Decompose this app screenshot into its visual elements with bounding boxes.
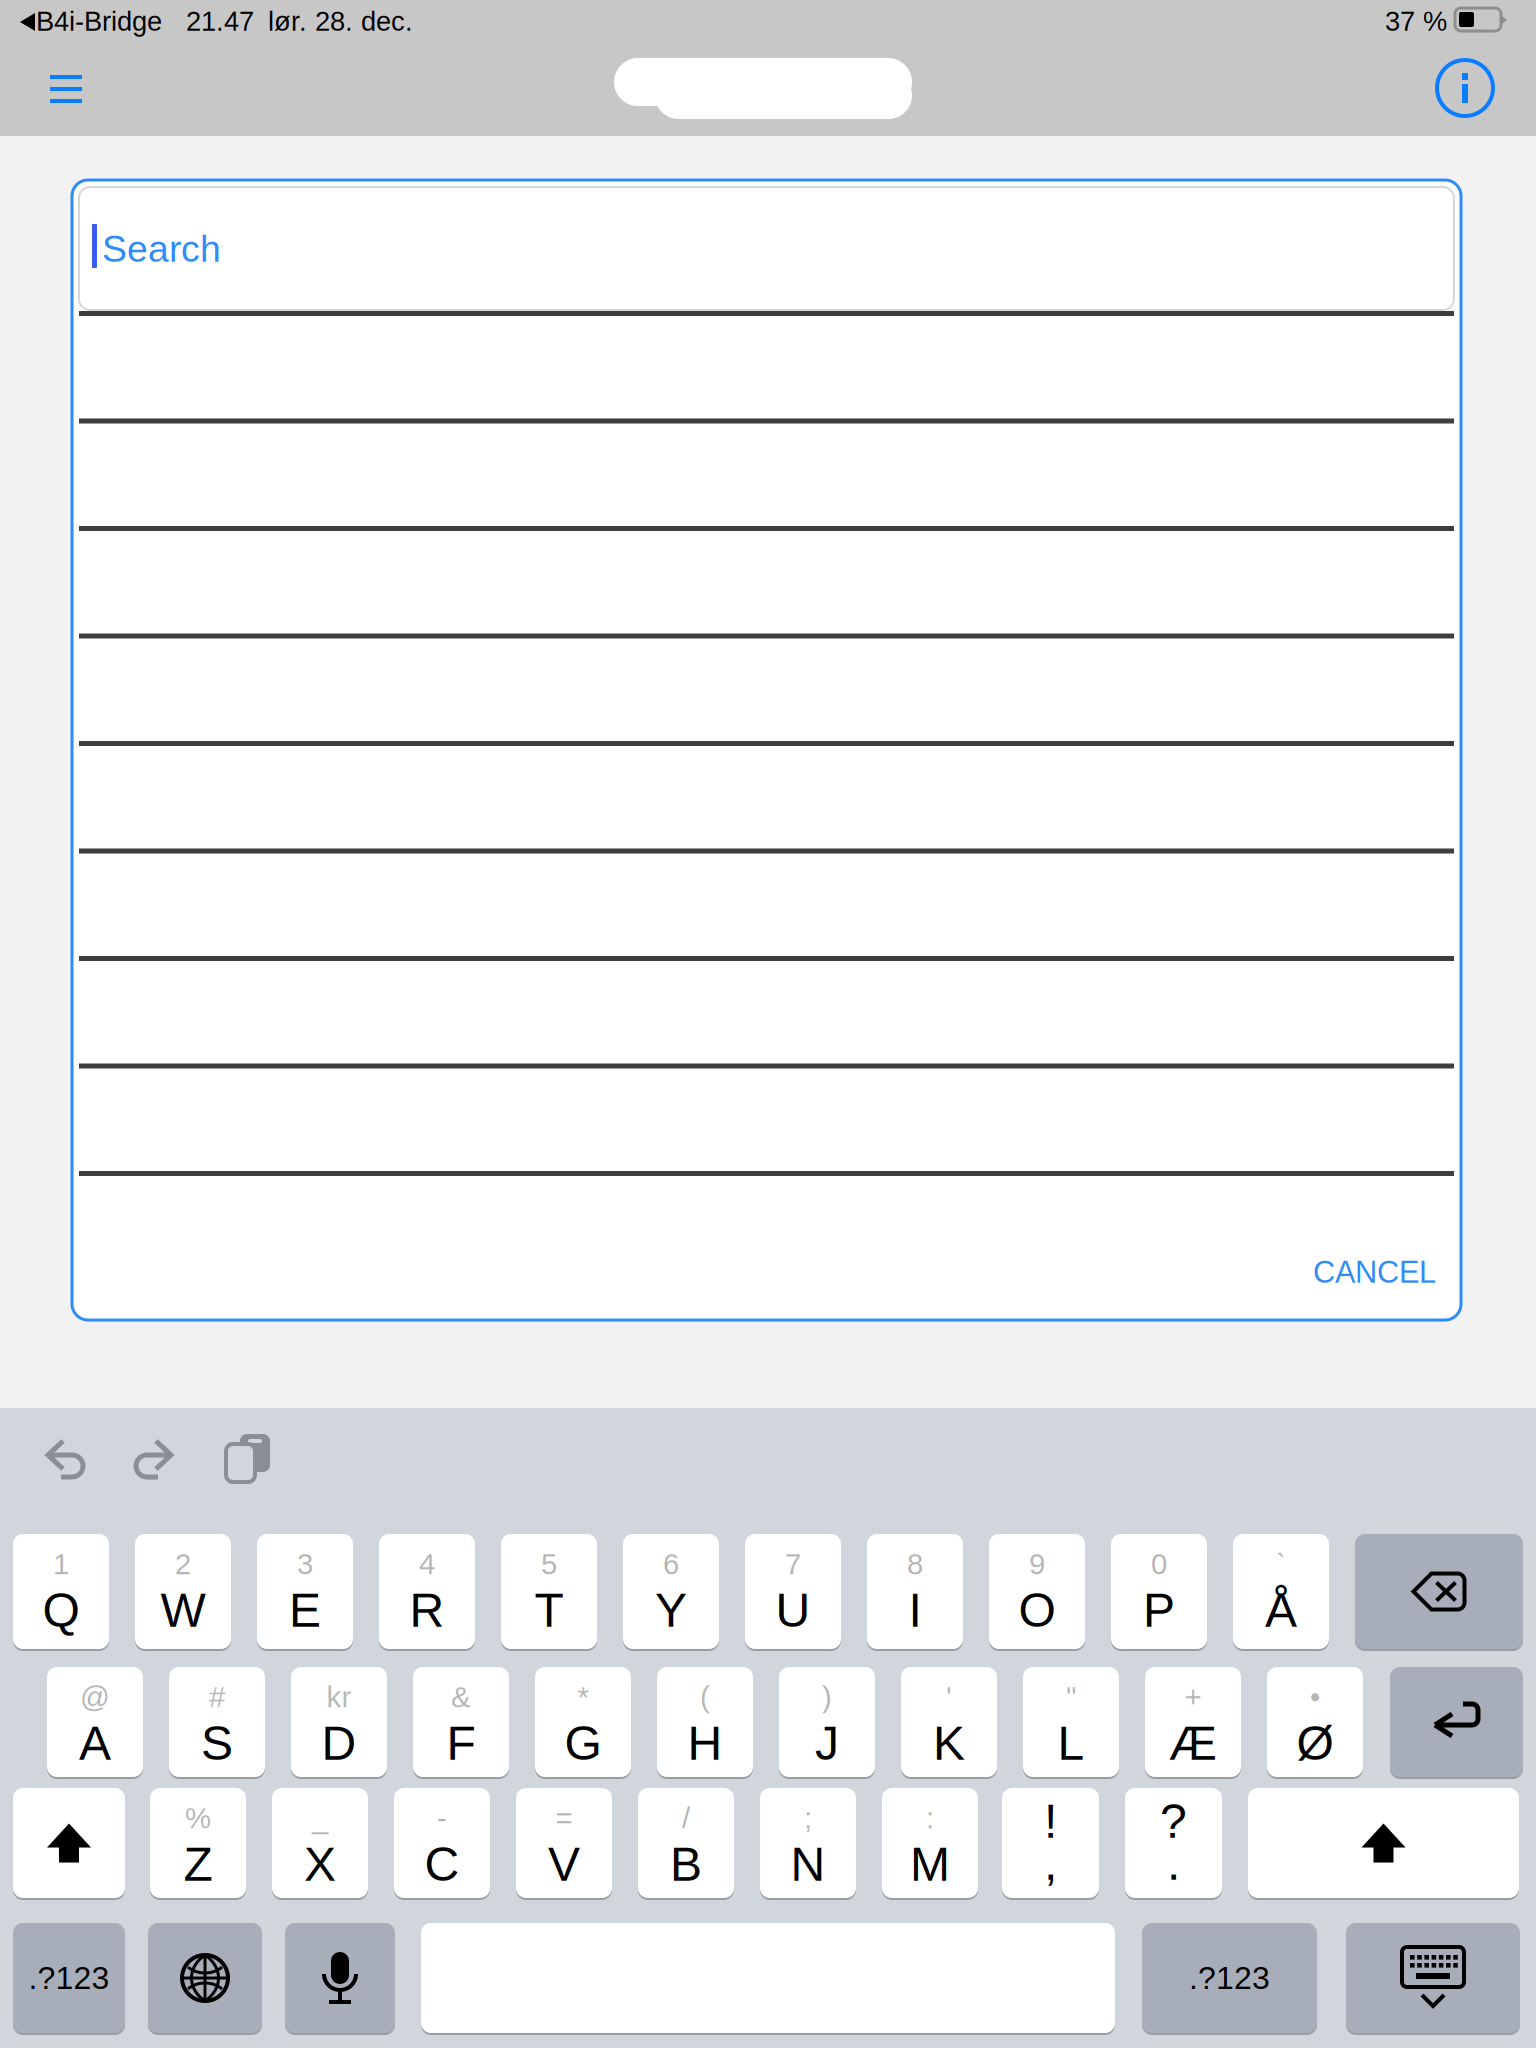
staticText: . bbox=[1167, 1836, 1180, 1890]
staticText: _ bbox=[312, 1802, 328, 1834]
button[interactable]: Hide keyboard bbox=[1346, 1922, 1520, 2034]
staticText: @ bbox=[80, 1681, 110, 1713]
button[interactable]: - bbox=[394, 1787, 490, 1899]
button[interactable]: Menu bbox=[40, 64, 92, 112]
staticText: - bbox=[437, 1802, 447, 1834]
button[interactable]: ' bbox=[901, 1666, 997, 1778]
staticText: Æ bbox=[1169, 1716, 1217, 1770]
button[interactable]: ) bbox=[779, 1666, 875, 1778]
staticText: H bbox=[687, 1716, 722, 1770]
staticText: K bbox=[933, 1716, 965, 1770]
staticText: U bbox=[775, 1583, 810, 1637]
staticText: / bbox=[682, 1802, 690, 1834]
staticText: E bbox=[289, 1583, 321, 1637]
button[interactable]: .?123 bbox=[13, 1922, 125, 2034]
staticText: W bbox=[160, 1583, 205, 1637]
button[interactable]: CANCEL bbox=[1304, 1250, 1436, 1294]
staticText: T bbox=[534, 1583, 563, 1637]
button[interactable]: Next keyboard bbox=[148, 1922, 262, 2034]
button[interactable]: " bbox=[1023, 1666, 1119, 1778]
staticText: ; bbox=[804, 1802, 812, 1834]
button[interactable]: 2 bbox=[135, 1533, 231, 1650]
button[interactable]: Paste bbox=[226, 1434, 274, 1486]
staticText: D bbox=[321, 1716, 356, 1770]
button[interactable]: 8 bbox=[867, 1533, 963, 1650]
button[interactable]: 5 bbox=[501, 1533, 597, 1650]
staticText: ! bbox=[1044, 1794, 1057, 1848]
staticText: Y bbox=[655, 1583, 687, 1637]
staticText: .?123 bbox=[28, 1960, 109, 1996]
button[interactable]: / bbox=[638, 1787, 734, 1899]
staticText: 7 bbox=[785, 1548, 801, 1580]
button[interactable]: ; bbox=[760, 1787, 856, 1899]
button[interactable]: Shift bbox=[13, 1787, 125, 1899]
button[interactable]: + bbox=[1145, 1666, 1241, 1778]
staticText: N bbox=[790, 1837, 825, 1891]
button[interactable]: ? bbox=[1125, 1787, 1222, 1899]
button[interactable]: Info bbox=[1435, 58, 1495, 118]
button[interactable]: Delete bbox=[1355, 1533, 1523, 1650]
staticText: = bbox=[555, 1802, 572, 1834]
staticText: & bbox=[451, 1681, 471, 1713]
button[interactable]: 7 bbox=[745, 1533, 841, 1650]
staticText: Search bbox=[102, 228, 221, 270]
button[interactable]: .?123 bbox=[1142, 1922, 1317, 2034]
button[interactable]: = bbox=[516, 1787, 612, 1899]
staticText: 9 bbox=[1029, 1548, 1045, 1580]
staticText: R bbox=[409, 1583, 444, 1637]
staticText: X bbox=[304, 1837, 336, 1891]
button[interactable]: 9 bbox=[989, 1533, 1085, 1650]
button[interactable]: % bbox=[150, 1787, 246, 1899]
button[interactable]: _ bbox=[272, 1787, 368, 1899]
staticText: CANCEL bbox=[1313, 1255, 1436, 1289]
staticText: * bbox=[577, 1681, 588, 1713]
button[interactable]: Return bbox=[1390, 1666, 1523, 1778]
button[interactable]: ` bbox=[1233, 1533, 1329, 1650]
button[interactable]: Space bbox=[421, 1922, 1115, 2034]
staticText: , bbox=[1044, 1836, 1057, 1890]
staticText: A bbox=[79, 1716, 111, 1770]
staticText: B4i-Bridge bbox=[36, 6, 162, 36]
staticText: 37 % bbox=[1385, 6, 1447, 36]
staticText: Z bbox=[183, 1837, 212, 1891]
staticText: Q bbox=[42, 1583, 79, 1637]
button[interactable]: Shift bbox=[1248, 1787, 1519, 1899]
staticText: kr bbox=[326, 1681, 351, 1713]
staticText: I bbox=[908, 1583, 921, 1637]
button[interactable]: ( bbox=[657, 1666, 753, 1778]
staticText: + bbox=[1184, 1681, 1201, 1713]
staticText: O bbox=[1018, 1583, 1055, 1637]
button[interactable]: & bbox=[413, 1666, 509, 1778]
button[interactable]: • bbox=[1267, 1666, 1363, 1778]
button[interactable]: : bbox=[882, 1787, 978, 1899]
staticText: 5 bbox=[541, 1548, 557, 1580]
staticText: ` bbox=[1276, 1548, 1286, 1580]
staticText: • bbox=[1310, 1681, 1320, 1713]
button[interactable]: kr bbox=[291, 1666, 387, 1778]
button[interactable]: 0 bbox=[1111, 1533, 1207, 1650]
staticText: 3 bbox=[297, 1548, 313, 1580]
button[interactable]: @ bbox=[47, 1666, 143, 1778]
button[interactable]: 4 bbox=[379, 1533, 475, 1650]
button[interactable]: ! bbox=[1002, 1787, 1099, 1899]
staticText: .?123 bbox=[1189, 1960, 1270, 1996]
staticText: % bbox=[185, 1802, 211, 1834]
staticText: ' bbox=[946, 1681, 952, 1713]
staticText: " bbox=[1066, 1681, 1076, 1713]
button[interactable]: Redo bbox=[134, 1440, 173, 1478]
staticText: ) bbox=[822, 1681, 832, 1713]
staticText: lør. 28. dec. bbox=[268, 6, 413, 36]
staticText: : bbox=[926, 1802, 934, 1834]
button[interactable]: * bbox=[535, 1666, 631, 1778]
staticText: # bbox=[209, 1681, 225, 1713]
button[interactable]: # bbox=[169, 1666, 265, 1778]
staticText: 8 bbox=[907, 1548, 923, 1580]
staticText: 0 bbox=[1151, 1548, 1167, 1580]
button[interactable]: 3 bbox=[257, 1533, 353, 1650]
staticText: B bbox=[670, 1837, 702, 1891]
button[interactable]: 1 bbox=[13, 1533, 109, 1650]
button[interactable]: 6 bbox=[623, 1533, 719, 1650]
button[interactable]: Dictation bbox=[285, 1922, 395, 2034]
button[interactable]: Undo bbox=[46, 1440, 85, 1478]
staticText: G bbox=[564, 1716, 601, 1770]
